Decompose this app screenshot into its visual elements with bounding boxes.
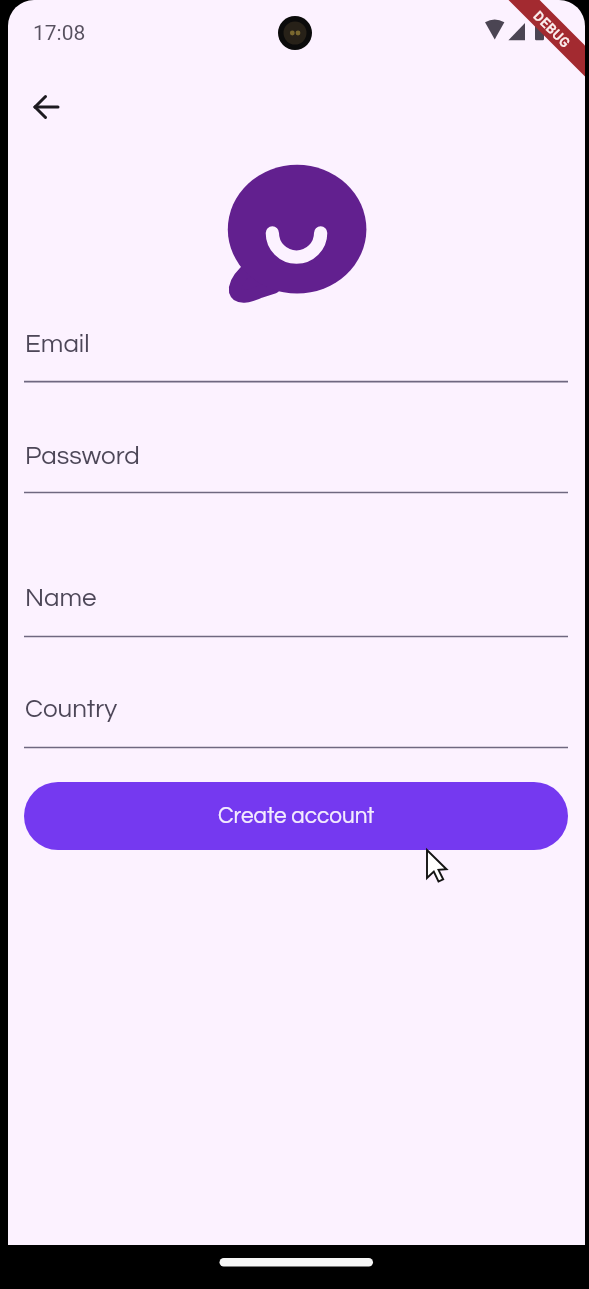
button[interactable]: Back [21, 81, 77, 137]
staticText: Create account [218, 805, 375, 828]
staticText: 17:08 [33, 21, 86, 46]
staticText: DEBUG [531, 8, 574, 51]
button[interactable]: Name [8, 571, 585, 659]
staticText: Password [25, 443, 140, 470]
staticText: Country [25, 696, 118, 723]
staticText: Name [25, 585, 97, 612]
button[interactable]: Password [8, 429, 585, 515]
button[interactable]: Email [8, 317, 585, 404]
button[interactable]: Country [8, 682, 585, 770]
button[interactable]: Create account [24, 782, 568, 850]
staticText: Email [25, 331, 90, 358]
